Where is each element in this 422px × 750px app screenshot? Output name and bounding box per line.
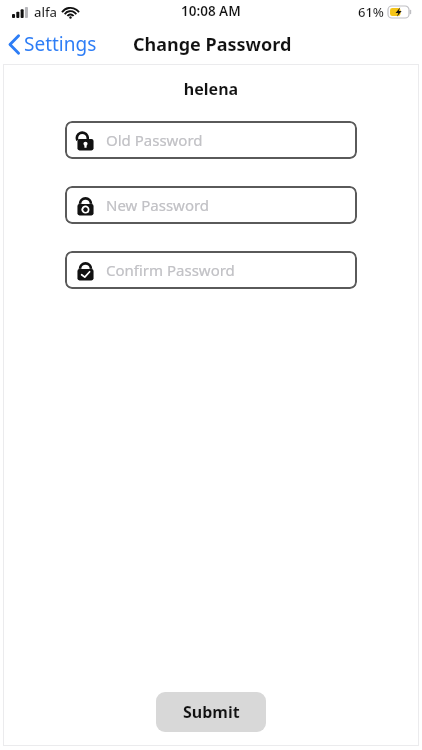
staticText: 61% — [358, 3, 384, 21]
button[interactable]: New Password — [65, 186, 357, 224]
staticText: 10:08 AM — [181, 2, 241, 20]
button[interactable]: Settings — [0, 27, 107, 61]
staticText: helena — [3, 78, 419, 100]
staticText: New Password — [106, 195, 210, 215]
button[interactable]: Confirm Password — [65, 251, 357, 289]
staticText: alfa — [34, 3, 58, 21]
staticText: Change Password — [133, 32, 292, 57]
staticText: Old Password — [106, 130, 203, 150]
staticText: Confirm Password — [106, 260, 235, 280]
button[interactable]: Old Password — [65, 121, 357, 159]
staticText: Settings — [24, 31, 97, 57]
staticText: Submit — [183, 701, 240, 723]
button[interactable]: Submit — [156, 692, 266, 732]
